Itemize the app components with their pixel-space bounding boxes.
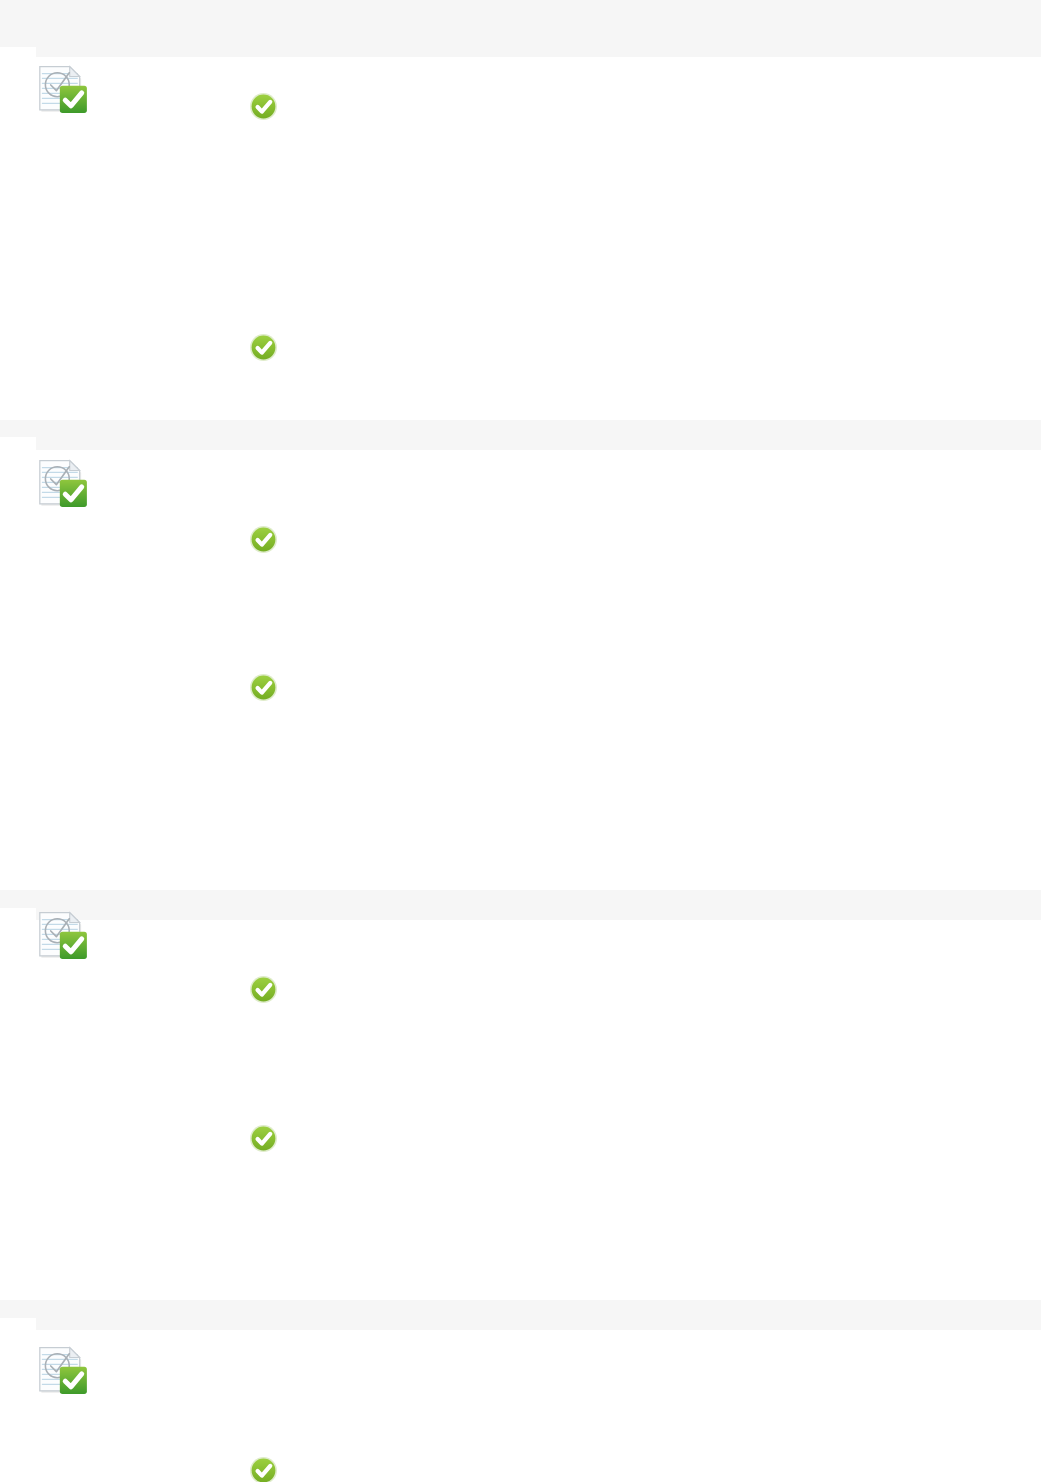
button[interactable]: Completed — [250, 976, 277, 1003]
button[interactable]: Completed — [250, 1125, 277, 1152]
button[interactable]: Completed — [250, 1457, 277, 1482]
button[interactable]: Completed note — [38, 458, 90, 510]
button[interactable]: Completed — [250, 93, 277, 120]
button[interactable]: Completed note — [38, 910, 90, 962]
button[interactable]: Completed — [250, 674, 277, 701]
button[interactable]: Completed — [250, 334, 277, 361]
button[interactable]: Completed — [250, 526, 277, 553]
button[interactable]: Completed note — [38, 1345, 90, 1397]
button[interactable]: Completed note — [38, 64, 90, 116]
